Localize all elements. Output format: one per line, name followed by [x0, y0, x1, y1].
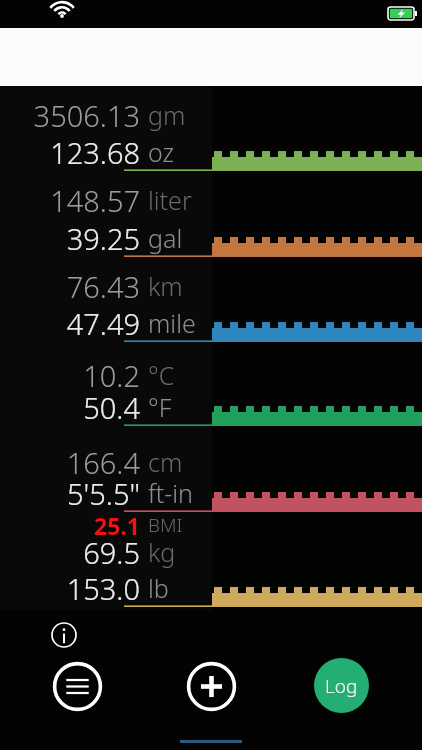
- staticText: 166.4: [0, 443, 140, 481]
- button[interactable]: Menu: [52, 661, 103, 712]
- staticText: 10.2: [0, 356, 140, 394]
- button[interactable]: 5'5.5": [0, 474, 422, 512]
- staticText: gal: [148, 221, 183, 255]
- staticText: cm: [148, 445, 183, 479]
- button[interactable]: 148.57: [0, 181, 422, 219]
- button[interactable]: 10.2: [0, 356, 422, 394]
- button[interactable]: 25.1: [0, 506, 422, 544]
- staticText: kg: [148, 535, 176, 569]
- staticText: 25.1: [0, 510, 140, 541]
- staticText: 148.57: [0, 181, 140, 219]
- staticText: °C: [148, 358, 175, 392]
- staticText: 5'5.5": [0, 474, 140, 512]
- staticText: liter: [148, 183, 192, 217]
- staticText: °F: [148, 390, 172, 424]
- button[interactable]: 69.5: [0, 533, 422, 571]
- button[interactable]: 166.4: [0, 443, 422, 481]
- button[interactable]: 47.49: [0, 304, 422, 342]
- staticText: ft-in: [148, 476, 193, 510]
- button[interactable]: 76.43: [0, 267, 422, 305]
- button[interactable]: Info: [50, 621, 78, 649]
- staticText: 39.25: [0, 219, 140, 257]
- staticText: Log: [325, 673, 358, 699]
- staticText: 153.0: [0, 569, 140, 607]
- staticText: 69.5: [0, 533, 140, 571]
- staticText: gm: [148, 98, 186, 132]
- staticText: 123.68: [0, 133, 140, 171]
- staticText: BMI: [148, 512, 183, 538]
- staticText: 47.49: [0, 304, 140, 342]
- button[interactable]: 39.25: [0, 219, 422, 257]
- staticText: km: [148, 269, 183, 303]
- staticText: 76.43: [0, 267, 140, 305]
- button[interactable]: 50.4: [0, 388, 422, 426]
- button[interactable]: 3506.13: [0, 96, 422, 134]
- staticText: oz: [148, 135, 175, 169]
- staticText: lb: [148, 571, 169, 605]
- staticText: 3506.13: [0, 96, 140, 134]
- button[interactable]: 153.0: [0, 569, 422, 607]
- staticText: mile: [148, 306, 196, 340]
- button[interactable]: Log: [314, 658, 369, 713]
- button[interactable]: Add entry: [186, 661, 237, 712]
- staticText: 50.4: [0, 388, 140, 426]
- button[interactable]: 123.68: [0, 133, 422, 171]
